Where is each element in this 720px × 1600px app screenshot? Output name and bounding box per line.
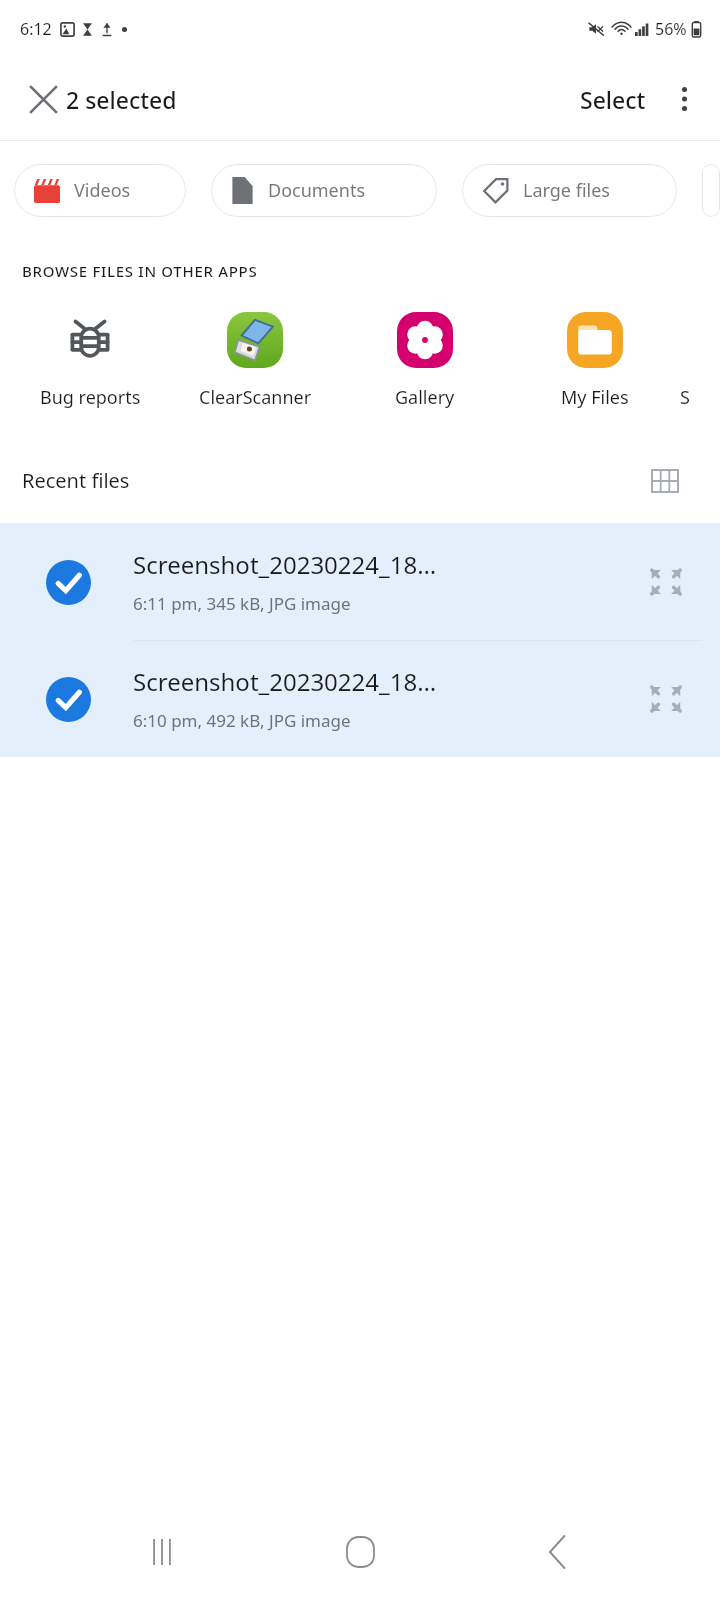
button[interactable]: Expand preview <box>640 673 692 725</box>
staticText: 6:11 pm, 345 kB, JPG image <box>133 592 351 615</box>
button[interactable]: Select <box>574 78 652 121</box>
button[interactable]: Back <box>522 1516 594 1588</box>
button[interactable]: Screenshot_20230224_18… <box>0 523 720 640</box>
staticText: Bug reports <box>40 385 141 410</box>
staticText: 2 selected <box>66 84 177 115</box>
button[interactable]: Gallery <box>340 307 510 414</box>
button[interactable]: Large files <box>462 164 677 217</box>
button[interactable]: Expand preview <box>640 556 692 608</box>
staticText: S <box>680 385 690 410</box>
staticText: Recent files <box>22 467 130 494</box>
button[interactable]: Recent apps <box>126 1516 198 1588</box>
staticText: Screenshot_20230224_18… <box>133 665 437 698</box>
staticText: 56% <box>655 18 687 40</box>
button[interactable]: More options <box>660 75 708 123</box>
button[interactable]: Home <box>324 1516 396 1588</box>
staticText: ClearScanner <box>199 385 312 410</box>
staticText: My Files <box>561 385 629 410</box>
staticText: Gallery <box>395 385 455 410</box>
staticText: Screenshot_20230224_18… <box>133 548 437 581</box>
button[interactable]: Bug reports <box>10 307 170 414</box>
staticText: Select <box>580 84 646 115</box>
staticText: Videos <box>74 178 131 203</box>
staticText: Large files <box>523 178 610 203</box>
button[interactable]: Documents <box>211 164 437 217</box>
button[interactable]: Videos <box>14 164 186 217</box>
staticText: 6:12 <box>20 18 52 40</box>
staticText: Documents <box>268 178 366 203</box>
button[interactable]: Switch to grid view <box>642 458 688 504</box>
button[interactable]: Downloads <box>702 164 720 217</box>
button[interactable]: Close selection <box>18 74 68 124</box>
button[interactable]: ClearScanner <box>170 307 340 414</box>
button[interactable]: My Files <box>510 307 680 414</box>
staticText: BROWSE FILES IN OTHER APPS <box>22 261 258 281</box>
button[interactable]: Screenshot_20230224_18… <box>0 640 720 757</box>
staticText: 6:10 pm, 492 kB, JPG image <box>133 709 351 732</box>
